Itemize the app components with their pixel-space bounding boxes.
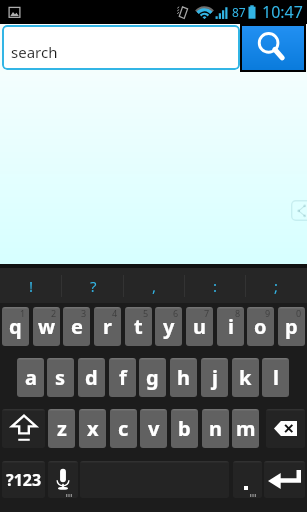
staticText: q xyxy=(9,313,22,340)
button[interactable]: g xyxy=(139,358,166,397)
staticText: , xyxy=(152,276,157,296)
button[interactable]: enter xyxy=(264,461,305,498)
staticText: ?123 xyxy=(6,469,42,491)
staticText: e xyxy=(71,313,83,340)
staticText: search xyxy=(11,42,58,62)
staticText: ! xyxy=(29,276,34,296)
button[interactable]: r xyxy=(94,307,121,346)
staticText: 2 xyxy=(51,307,57,319)
staticText: 87 xyxy=(232,4,246,20)
staticText: : xyxy=(213,276,218,296)
button[interactable]: u xyxy=(186,307,213,346)
button[interactable]: x xyxy=(79,409,106,448)
button[interactable]: t xyxy=(125,307,152,346)
staticText: 0 xyxy=(296,307,302,319)
staticText: y xyxy=(163,313,175,340)
button[interactable]: k xyxy=(232,358,259,397)
button[interactable]: l xyxy=(262,358,289,397)
staticText: j xyxy=(212,364,218,391)
staticText: n xyxy=(209,415,222,442)
button[interactable]: n xyxy=(202,409,229,448)
staticText: p xyxy=(285,313,298,340)
staticText: r xyxy=(103,313,112,340)
button[interactable]: m xyxy=(232,409,259,448)
staticText: f xyxy=(119,364,127,391)
staticText: h xyxy=(177,364,190,391)
staticText: s xyxy=(55,364,66,391)
staticText: m xyxy=(236,415,256,442)
button[interactable]: f xyxy=(109,358,136,397)
button[interactable]: z xyxy=(48,409,75,448)
button[interactable]: del xyxy=(266,409,305,448)
button[interactable]: q xyxy=(2,307,29,346)
staticText: g xyxy=(146,364,159,391)
staticText: ; xyxy=(274,276,279,296)
button[interactable]: mic xyxy=(48,461,78,498)
button[interactable]: ?123 xyxy=(2,461,45,498)
button[interactable]: Search xyxy=(242,26,304,70)
button[interactable]: Share xyxy=(291,200,307,221)
button[interactable]: p xyxy=(278,307,305,346)
button[interactable]: , xyxy=(124,268,185,303)
staticText: 7 xyxy=(204,307,210,319)
button[interactable] xyxy=(233,461,262,498)
button[interactable]: e xyxy=(63,307,90,346)
staticText: c xyxy=(118,415,129,442)
staticText: 3 xyxy=(81,307,87,319)
staticText: 10:47 xyxy=(262,1,303,23)
button[interactable]: i xyxy=(217,307,244,346)
staticText: ? xyxy=(90,276,97,296)
button[interactable]: h xyxy=(170,358,197,397)
button[interactable]: j xyxy=(201,358,228,397)
staticText: i xyxy=(228,313,234,340)
staticText: v xyxy=(148,415,160,442)
staticText: l xyxy=(273,364,279,391)
button[interactable]: ! xyxy=(0,268,62,303)
button[interactable]: ? xyxy=(62,268,124,303)
staticText: d xyxy=(85,364,98,391)
staticText: a xyxy=(25,364,37,391)
button[interactable]: a xyxy=(17,358,44,397)
button[interactable]: d xyxy=(78,358,105,397)
staticText: 9 xyxy=(265,307,271,319)
staticText: t xyxy=(134,313,143,340)
button[interactable]: y xyxy=(155,307,182,346)
staticText: x xyxy=(87,415,99,442)
button[interactable]: v xyxy=(140,409,167,448)
button[interactable]: shift xyxy=(2,409,45,448)
staticText: b xyxy=(178,415,191,442)
staticText: o xyxy=(254,313,267,340)
staticText: k xyxy=(239,364,252,391)
button[interactable]: w xyxy=(33,307,60,346)
staticText: w xyxy=(38,313,56,340)
button[interactable]: search xyxy=(2,25,240,70)
button[interactable]: ; xyxy=(246,268,307,303)
staticText: z xyxy=(57,415,67,442)
staticText: 1 xyxy=(20,307,26,319)
staticText: u xyxy=(193,313,206,340)
staticText: 5 xyxy=(143,307,149,319)
button[interactable]: s xyxy=(47,358,74,397)
staticText: 6 xyxy=(173,307,179,319)
button[interactable]: c xyxy=(110,409,137,448)
button[interactable]: b xyxy=(171,409,198,448)
staticText: 8 xyxy=(235,307,241,319)
button[interactable]: : xyxy=(185,268,246,303)
button[interactable]: o xyxy=(247,307,274,346)
staticText: 4 xyxy=(112,307,118,319)
